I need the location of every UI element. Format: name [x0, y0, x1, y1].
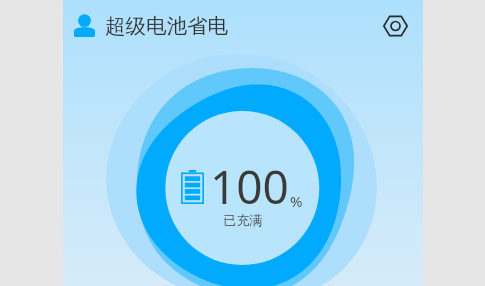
staticText: 超级电池省电 [105, 13, 228, 39]
staticText: 已充满 [63, 212, 423, 228]
staticText: % [290, 191, 303, 211]
staticText: 100 [210, 155, 289, 218]
button[interactable]: 超级电池省电 [74, 0, 228, 52]
button[interactable]: Settings [382, 13, 408, 39]
